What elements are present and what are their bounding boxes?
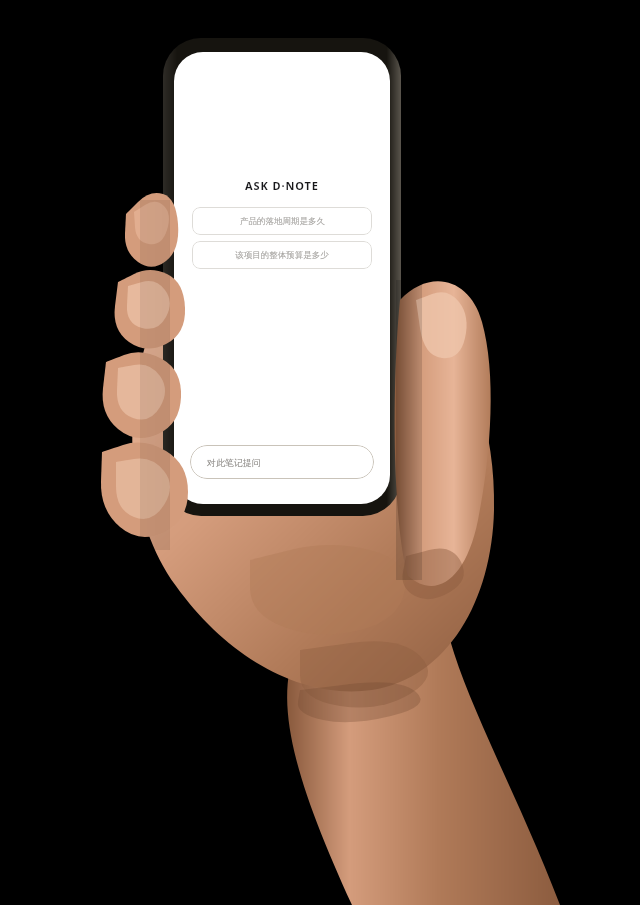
staticText: ASK D·NOTE (245, 178, 319, 193)
staticText: 该项目的整体预算是多少 (235, 250, 329, 261)
staticText: 对此笔记提问 (207, 457, 261, 468)
button[interactable]: 产品的落地周期是多久 (192, 207, 372, 235)
staticText: 产品的落地周期是多久 (240, 216, 325, 227)
button[interactable]: 该项目的整体预算是多少 (192, 241, 372, 269)
button[interactable]: Ask about this note (190, 445, 374, 479)
